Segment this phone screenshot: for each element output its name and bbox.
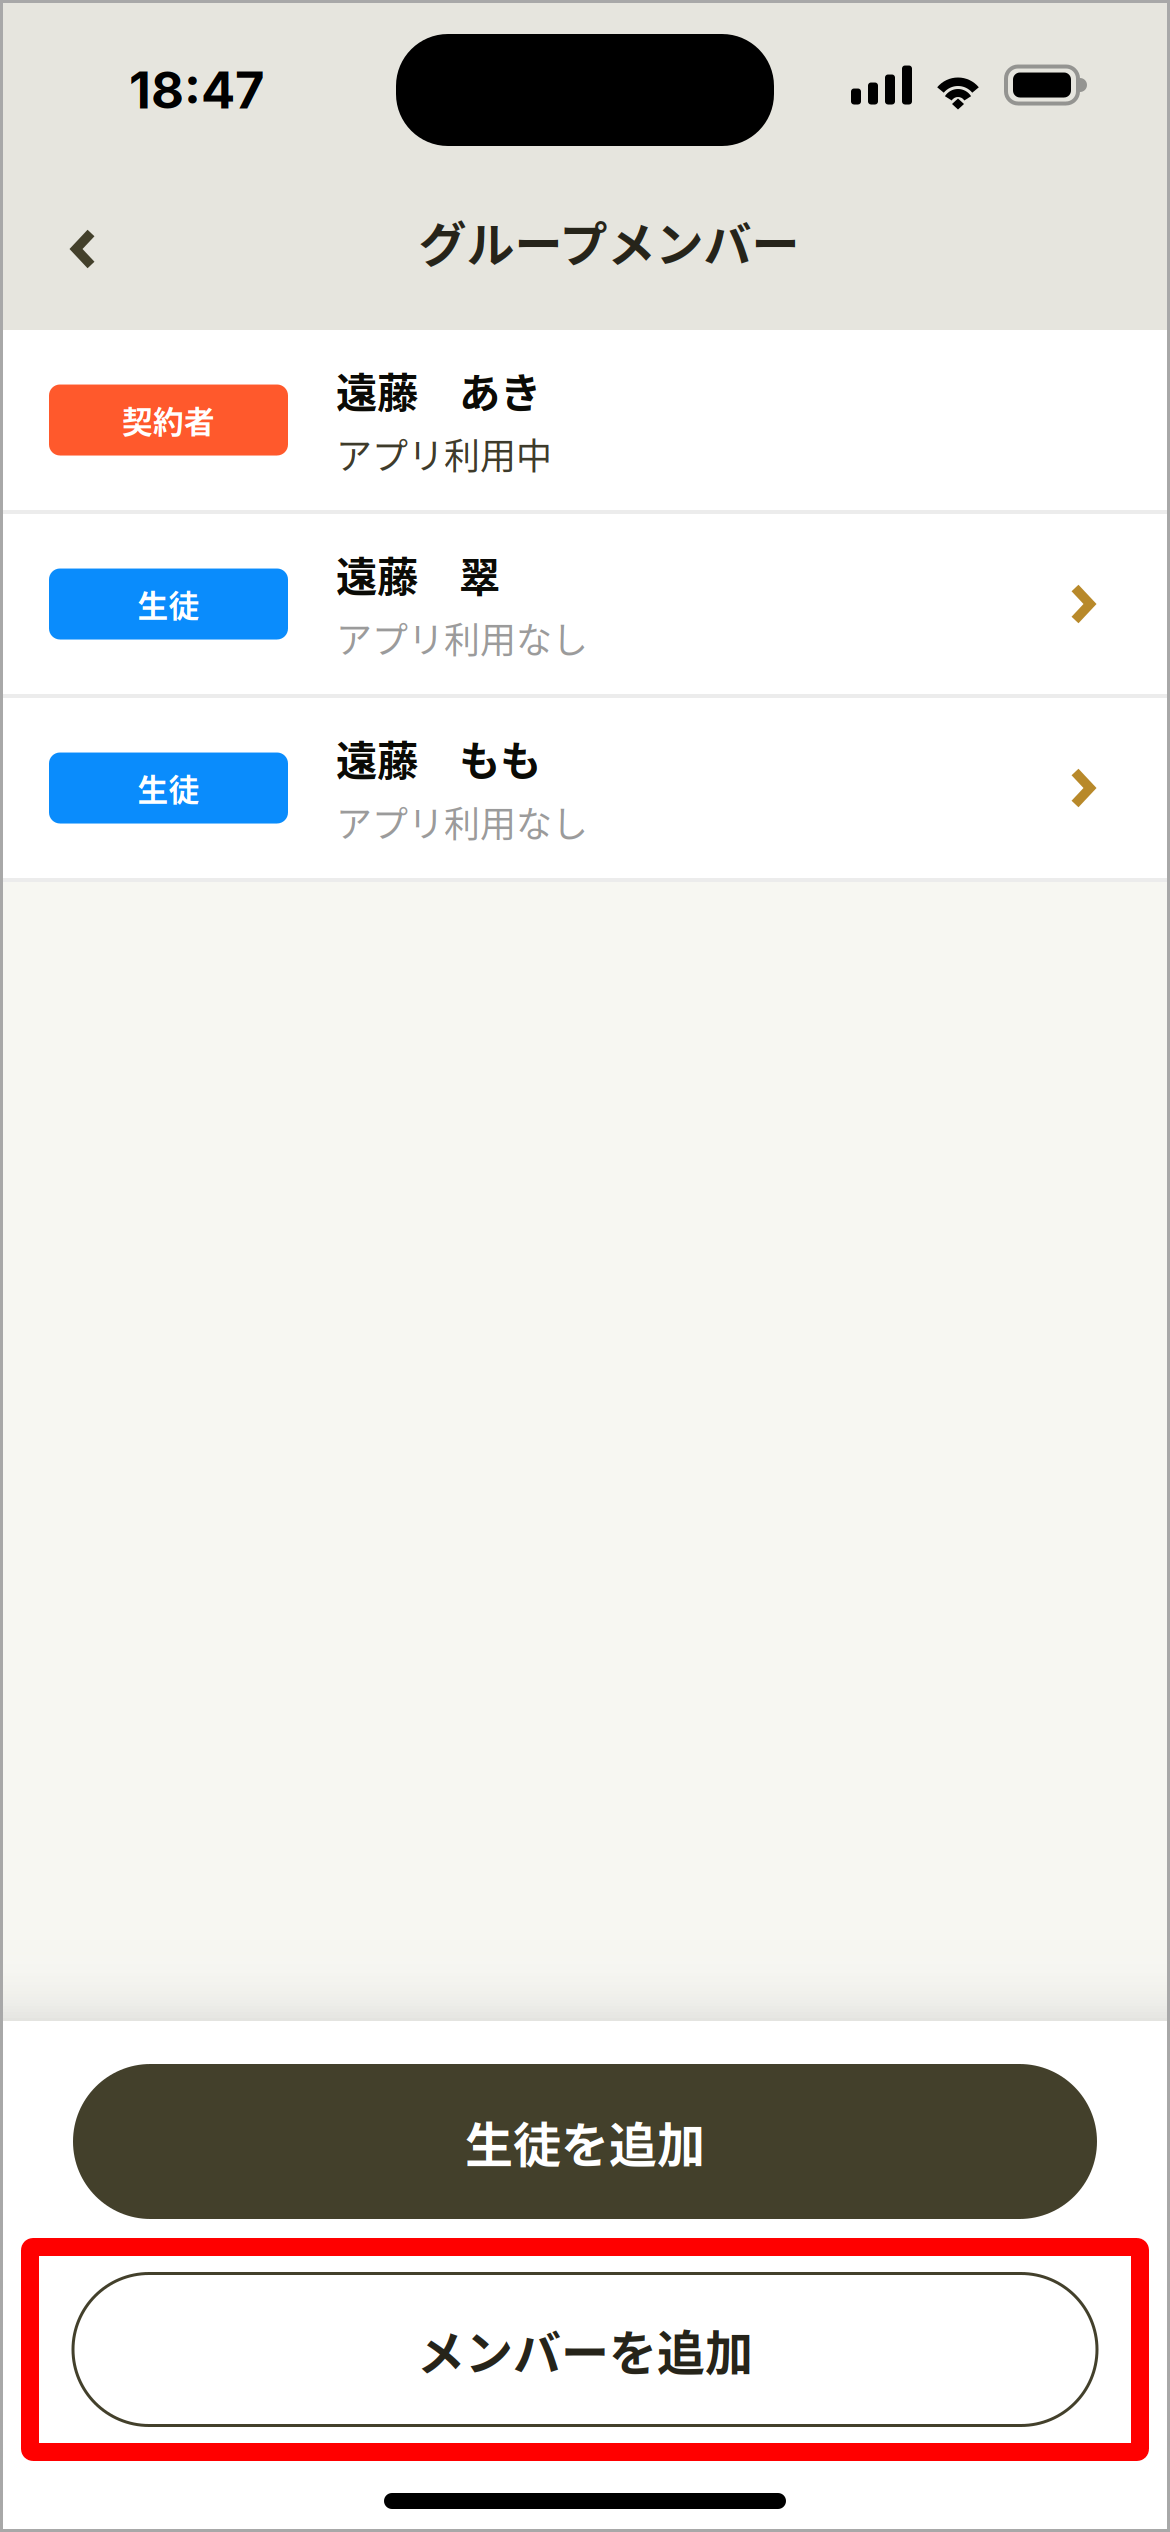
staticText: アプリ利用なし bbox=[336, 612, 588, 664]
staticText: 遠藤 翠 bbox=[336, 544, 500, 604]
button[interactable]: 詳細 bbox=[1046, 705, 1170, 871]
button[interactable]: 生徒 bbox=[0, 698, 1170, 878]
staticText: 契約者 bbox=[122, 398, 215, 442]
staticText: 生徒 bbox=[137, 766, 199, 810]
button[interactable]: 生徒 bbox=[0, 514, 1170, 694]
button[interactable]: メンバーを追加 bbox=[73, 2273, 1097, 2425]
button[interactable]: 契約者 bbox=[0, 330, 1170, 510]
staticText: 遠藤 あき bbox=[336, 360, 541, 420]
staticText: アプリ利用中 bbox=[336, 428, 552, 480]
staticText: 生徒を追加 bbox=[465, 2107, 705, 2176]
staticText: 18:47 bbox=[129, 59, 264, 121]
staticText: アプリ利用なし bbox=[336, 796, 588, 848]
staticText: 生徒 bbox=[137, 582, 199, 626]
staticText: メンバーを追加 bbox=[417, 2315, 753, 2384]
staticText: グループメンバー bbox=[418, 206, 799, 276]
button[interactable]: 戻る bbox=[0, 186, 146, 324]
staticText: 遠藤 もも bbox=[336, 728, 541, 788]
button[interactable]: 詳細 bbox=[1046, 521, 1170, 687]
button[interactable]: 生徒を追加 bbox=[73, 2064, 1097, 2219]
